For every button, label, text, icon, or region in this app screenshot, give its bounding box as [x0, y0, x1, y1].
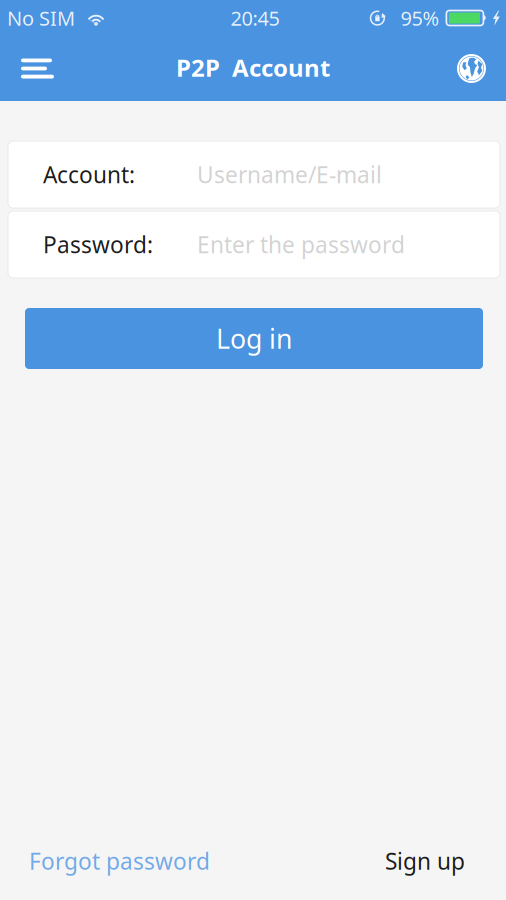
staticText: P2P Account	[176, 52, 330, 83]
button[interactable]: Log in	[25, 308, 483, 369]
button[interactable]: Language	[441, 36, 506, 101]
staticText: No SIM	[7, 5, 75, 31]
staticText: 95%	[400, 5, 439, 31]
button[interactable]: Forgot password	[29, 846, 210, 876]
button[interactable]: Menu	[0, 36, 70, 101]
button[interactable]: Sign up	[385, 846, 465, 876]
staticText: Password:	[43, 229, 153, 259]
staticText: Account:	[43, 159, 135, 189]
staticText: 20:45	[230, 5, 279, 31]
staticText: Enter the password	[197, 229, 405, 259]
staticText: Log in	[216, 321, 292, 356]
staticText: Username/E-mail	[197, 159, 382, 189]
button[interactable]: Password:	[8, 211, 500, 278]
staticText: Forgot password	[29, 846, 210, 876]
staticText: Sign up	[385, 846, 465, 876]
button[interactable]: Account:	[8, 141, 500, 208]
